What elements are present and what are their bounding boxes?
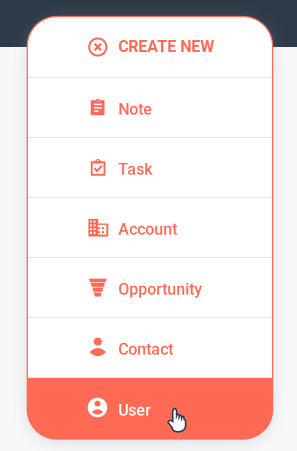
- staticText: Account: [118, 220, 177, 239]
- button[interactable]: Contact: [27, 317, 273, 377]
- staticText: User: [118, 401, 151, 420]
- staticText: Opportunity: [118, 280, 202, 299]
- button[interactable]: Opportunity: [27, 257, 273, 317]
- button[interactable]: Note: [27, 77, 273, 137]
- button[interactable]: Task: [27, 137, 273, 197]
- button[interactable]: Account: [27, 197, 273, 257]
- button[interactable]: CREATE NEW: [27, 17, 273, 77]
- button[interactable]: User: [27, 377, 273, 439]
- staticText: Note: [118, 100, 152, 119]
- staticText: Task: [118, 160, 152, 179]
- staticText: Contact: [118, 340, 173, 359]
- staticText: CREATE NEW: [118, 37, 214, 56]
